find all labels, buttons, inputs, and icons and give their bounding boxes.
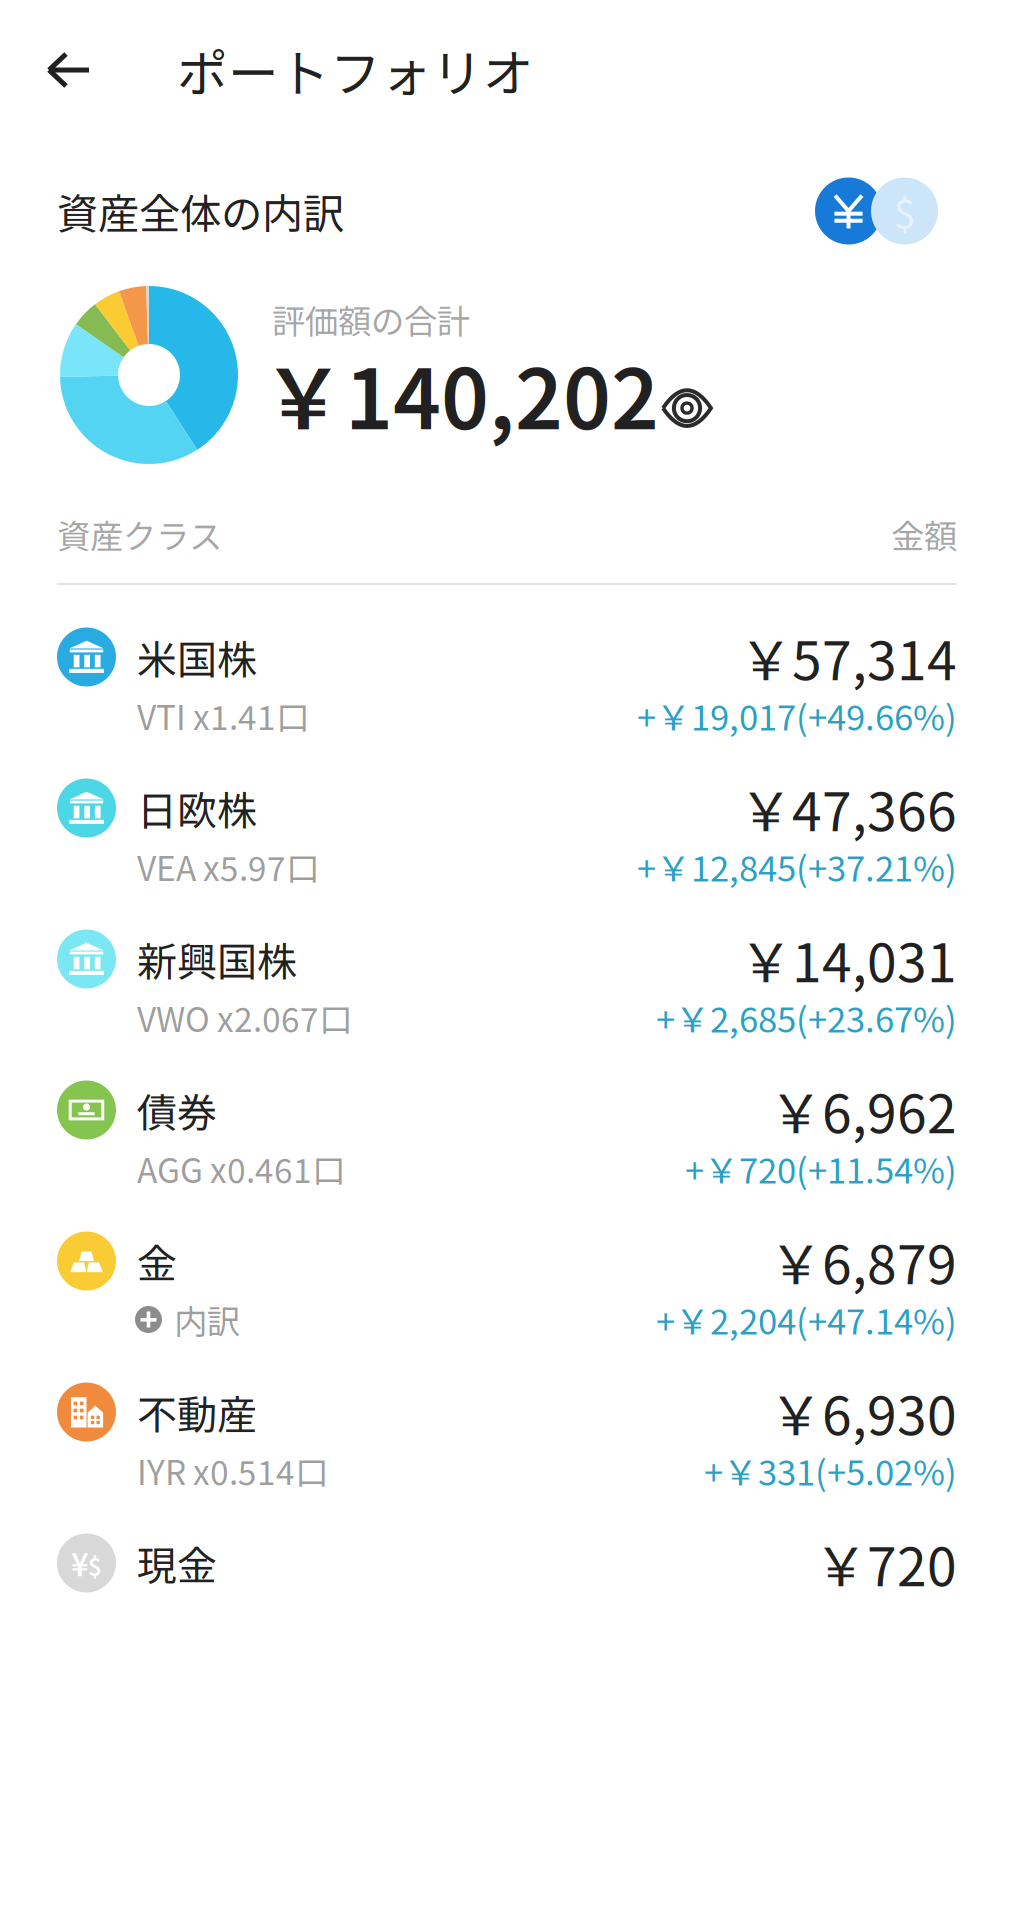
button[interactable]: ¥ [0,1491,1014,1642]
staticText: +￥12,845(+37.21%) [637,841,957,892]
button[interactable]: Back [0,0,177,140]
staticText: ￥720 [814,1524,957,1602]
button[interactable]: 新興国株 [0,887,1014,1038]
button[interactable]: 日欧株 [0,736,1014,887]
staticText: 金額 [891,510,957,558]
staticText: +￥720(+11.54%) [685,1143,957,1194]
button[interactable]: US dollar [871,177,938,244]
staticText: $ [88,1548,102,1583]
staticText: +￥331(+5.02%) [704,1445,957,1496]
button[interactable]: Toggle amount visibility [659,375,719,412]
staticText: 新興国株 [137,930,297,988]
staticText: ￥6,962 [769,1071,957,1149]
staticText: +￥2,204(+47.14%) [656,1294,957,1345]
button[interactable]: 債券 [0,1038,1014,1189]
staticText: ￥57,314 [739,618,957,696]
staticText: VTI x1.41口 [137,691,309,740]
staticText: $ [893,182,915,240]
staticText: 現金 [137,1534,217,1592]
staticText: ￥140,202 [262,333,659,453]
staticText: 資産クラス [57,510,222,558]
staticText: VEA x5.97口 [137,842,319,891]
button[interactable]: 米国株 [0,585,1014,736]
staticText: 債券 [137,1081,217,1139]
staticText: ￥6,930 [769,1373,957,1451]
staticText: AGG x0.461口 [137,1144,345,1193]
staticText: 日欧株 [137,779,257,837]
staticText: ￥47,366 [739,769,957,847]
staticText: ¥ [71,1541,89,1585]
button[interactable]: 不動産 [0,1340,1014,1491]
staticText: 米国株 [137,628,257,686]
staticText: 資産全体の内訳 [57,181,344,241]
staticText: 内訳 [174,1295,240,1344]
staticText: +￥19,017(+49.66%) [637,690,957,741]
staticText: 金 [137,1232,177,1290]
button[interactable]: Japanese yen [815,177,882,244]
staticText: 不動産 [137,1383,257,1441]
staticText: ポートフォリオ [177,33,534,107]
staticText: ￥6,879 [769,1222,957,1300]
staticText: +￥2,685(+23.67%) [656,992,957,1043]
staticText: 評価額の合計 [272,295,470,343]
staticText: VWO x2.067口 [137,993,352,1042]
staticText: IYR x0.514口 [137,1446,328,1495]
staticText: ￥14,031 [739,920,957,998]
button[interactable]: 金 [0,1189,1014,1340]
